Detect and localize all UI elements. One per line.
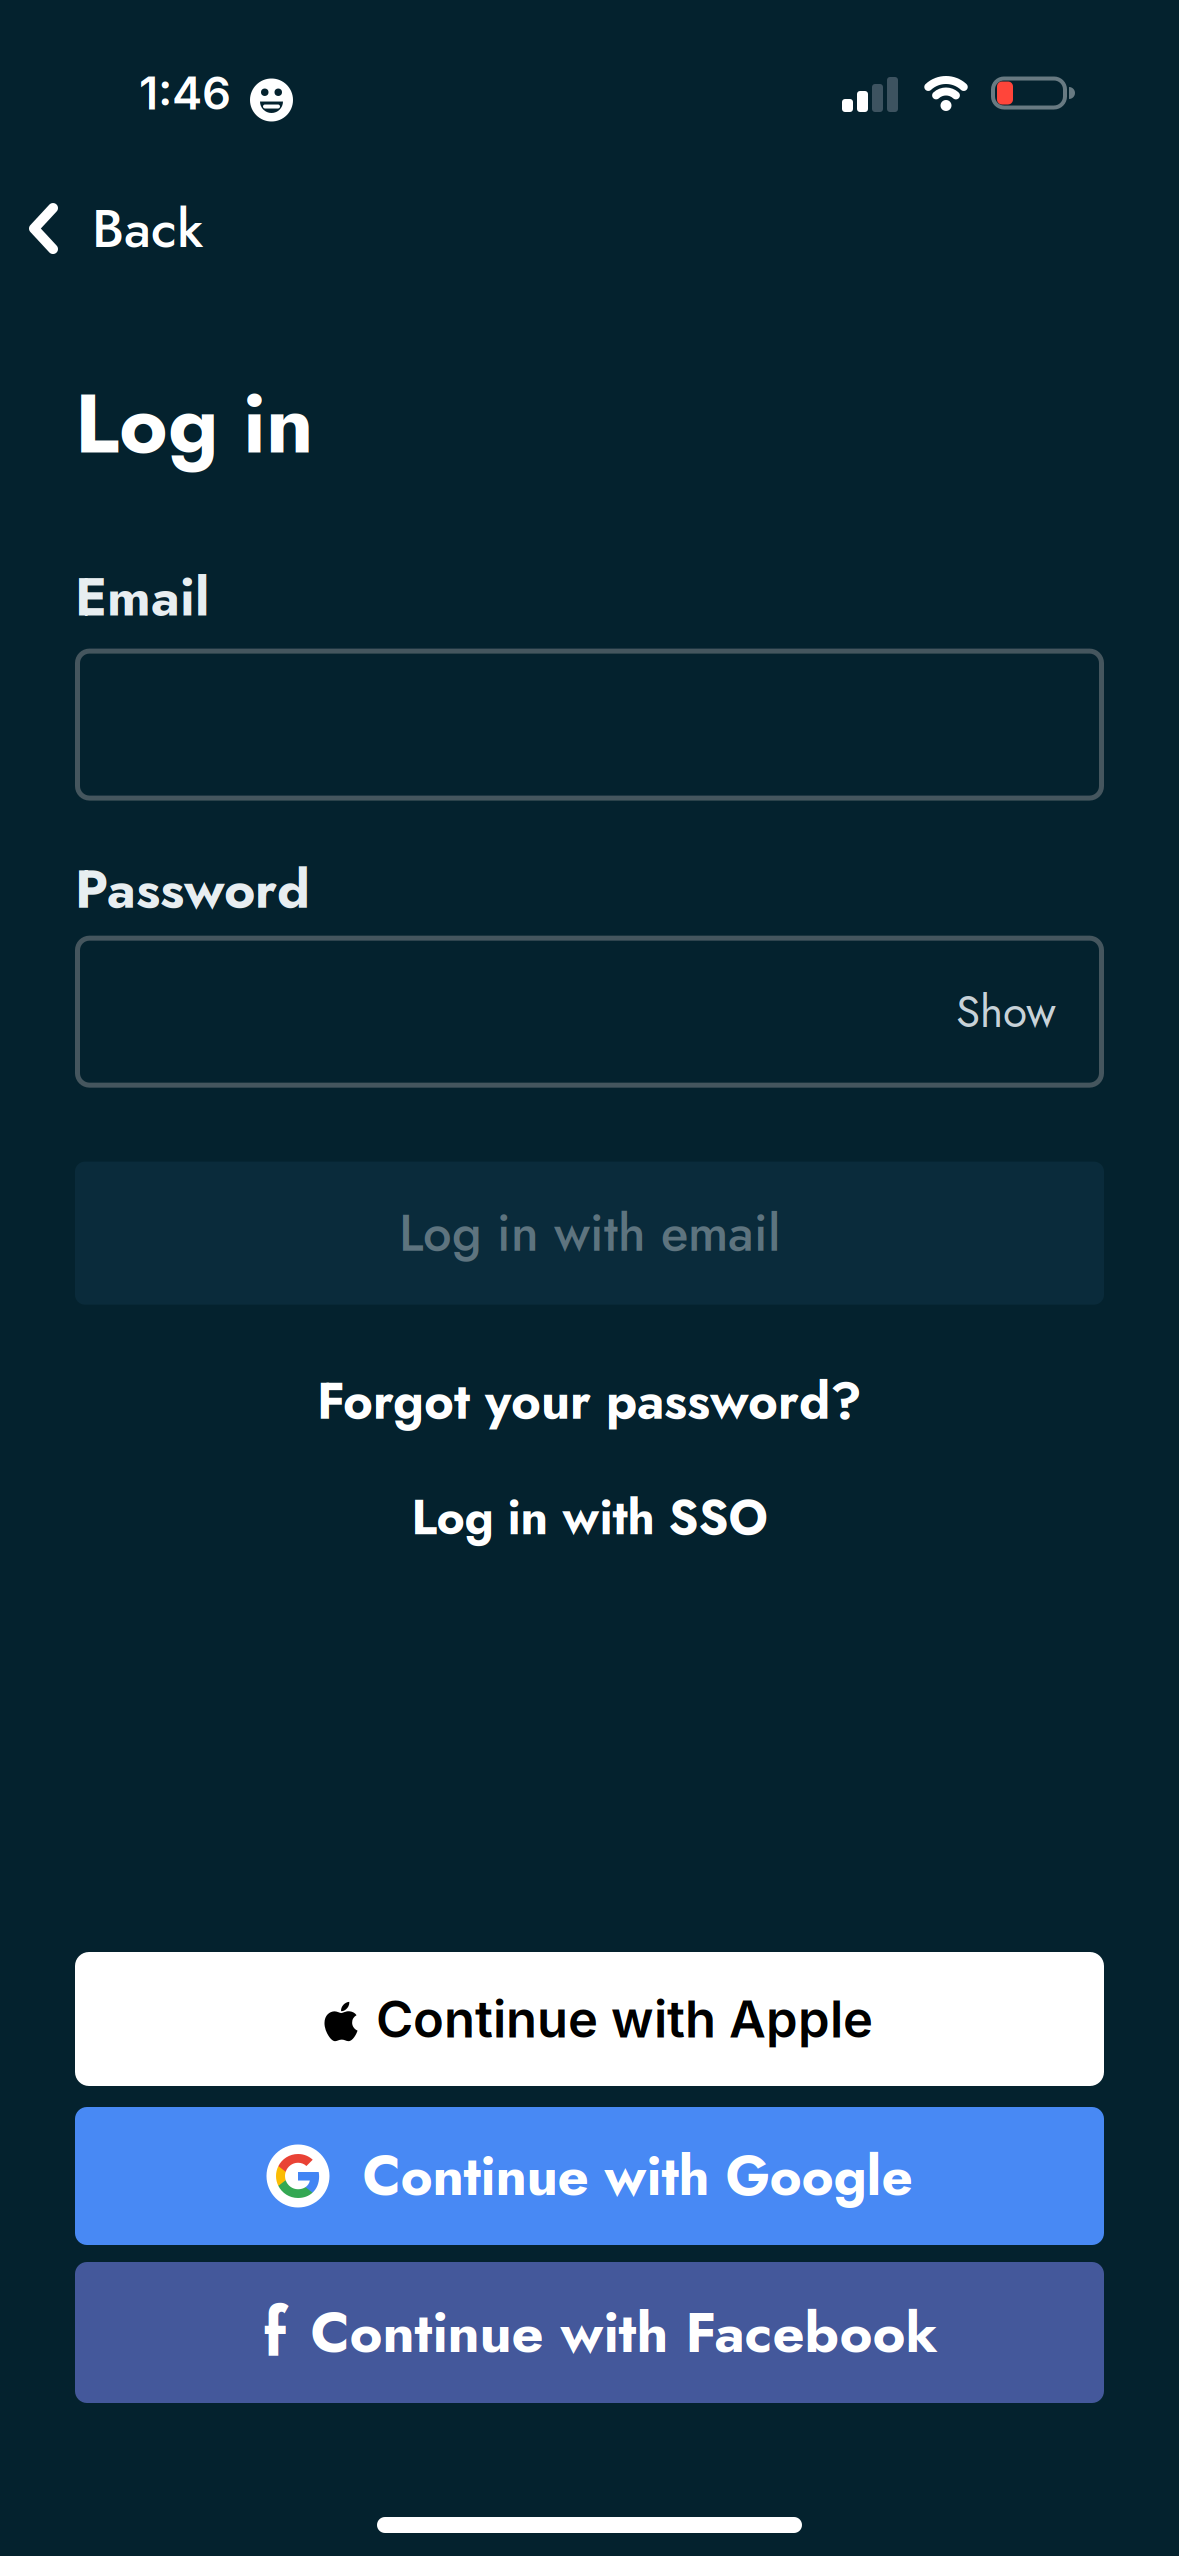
staticText: Forgot your password? (317, 1365, 862, 1438)
staticText: Password (75, 851, 310, 928)
button[interactable]: Back (0, 190, 203, 267)
staticText: f (263, 2284, 286, 2381)
staticText: Continue with Apple (376, 1988, 873, 2050)
button[interactable]: Log in with SSO (411, 1483, 767, 1552)
button[interactable]: Email (75, 649, 1104, 801)
staticText: Log in with SSO (411, 1483, 767, 1552)
button[interactable]: Log in with email (75, 1162, 1104, 1305)
button[interactable]: f (75, 2262, 1104, 2403)
staticText: 1:46 (139, 66, 231, 120)
staticText: Continue with Google (362, 2136, 912, 2215)
button[interactable]: Show (956, 980, 1104, 1043)
button[interactable]: Continue with Apple (75, 1952, 1104, 2086)
staticText: Back (92, 190, 203, 267)
button[interactable]: Continue with Google (75, 2107, 1104, 2245)
staticText: Log in with email (399, 1196, 780, 1270)
staticText: Show (956, 980, 1056, 1043)
staticText: Log in (75, 364, 314, 484)
button[interactable]: Password (75, 936, 1104, 1088)
button[interactable]: Forgot your password? (317, 1365, 862, 1438)
staticText: Continue with Facebook (310, 2292, 937, 2373)
staticText: Email (75, 558, 209, 636)
